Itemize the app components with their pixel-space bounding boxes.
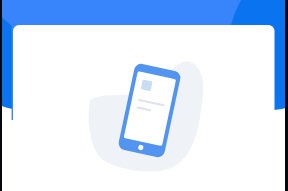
button[interactable]: Onboarding illustration bbox=[0, 0, 288, 191]
